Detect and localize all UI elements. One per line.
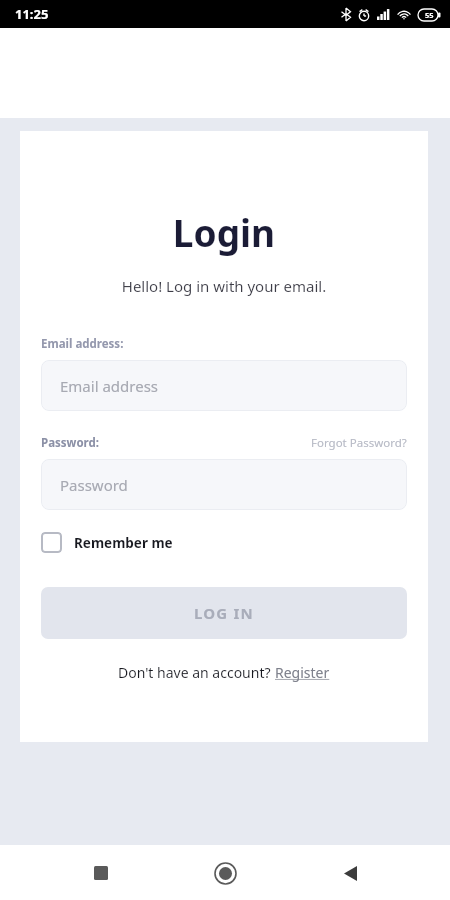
button[interactable]: LOG IN	[41, 587, 407, 639]
button[interactable]: Email address	[41, 360, 407, 411]
button[interactable]: Home	[201, 849, 249, 897]
staticText: Email address:	[41, 336, 124, 352]
button[interactable]: Recent apps	[77, 849, 125, 897]
staticText: 55	[425, 10, 434, 20]
staticText: Don't have an account?	[118, 663, 275, 682]
button[interactable]: Remember me	[41, 532, 173, 553]
button[interactable]: Register	[275, 663, 330, 682]
staticText: Password:	[41, 435, 100, 451]
button[interactable]: Back	[326, 849, 374, 897]
staticText: Hello! Log in with your email.	[41, 276, 407, 296]
staticText: 11:25	[15, 5, 49, 23]
button[interactable]: Forgot Password?	[311, 435, 407, 451]
button[interactable]: Password	[41, 459, 407, 510]
staticText: Password	[60, 475, 128, 495]
staticText: Email address	[60, 376, 159, 396]
staticText: Register	[275, 663, 330, 682]
staticText: Login	[41, 207, 407, 257]
staticText: Forgot Password?	[311, 435, 407, 451]
staticText: LOG IN	[194, 603, 254, 623]
staticText: Remember me	[74, 534, 173, 552]
